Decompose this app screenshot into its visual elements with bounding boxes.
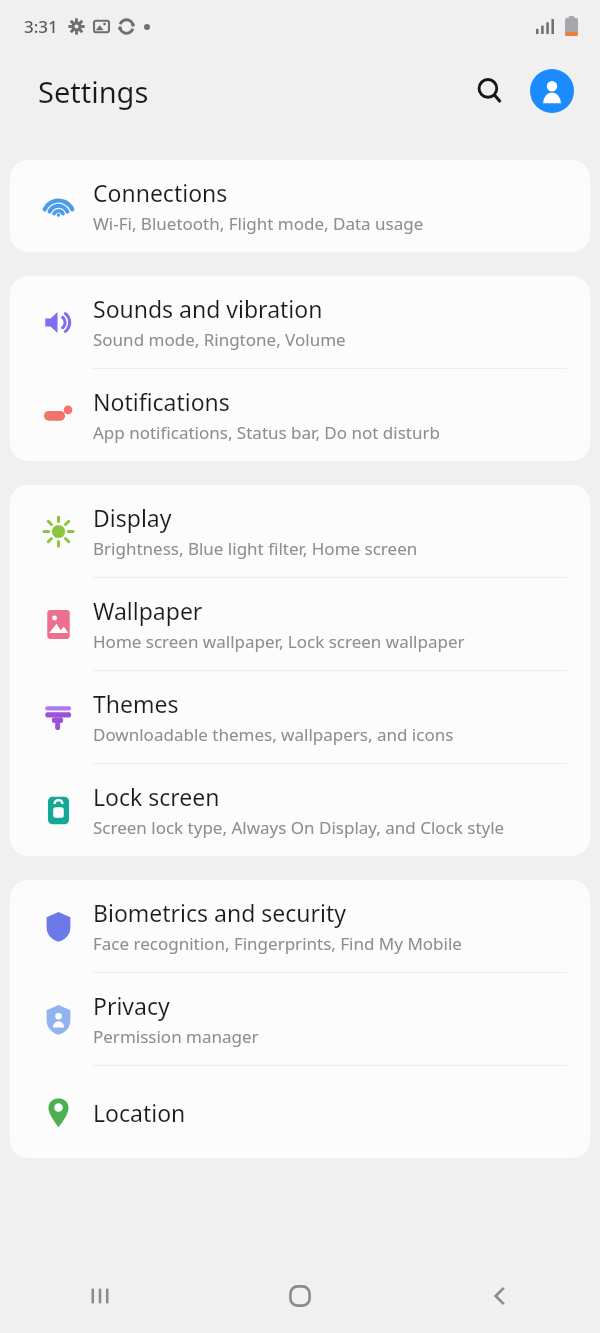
staticText: Lock screen <box>93 781 220 812</box>
button[interactable]: Search <box>467 68 513 114</box>
button[interactable]: Recents <box>0 1258 200 1333</box>
staticText: Notifications <box>93 386 230 417</box>
staticText: Wallpaper <box>93 595 203 626</box>
button[interactable]: Home <box>200 1258 400 1333</box>
button[interactable]: Location <box>10 1066 590 1158</box>
staticText: Downloadable themes, wallpapers, and ico… <box>93 723 454 746</box>
staticText: 3:31 <box>24 15 58 38</box>
staticText: Face recognition, Fingerprints, Find My … <box>93 932 462 955</box>
staticText: Privacy <box>93 990 170 1021</box>
staticText: Home screen wallpaper, Lock screen wallp… <box>93 630 465 653</box>
staticText: Location <box>93 1097 186 1128</box>
button[interactable]: Themes <box>10 671 590 763</box>
staticText: Permission manager <box>93 1025 259 1048</box>
button[interactable]: Wallpaper <box>10 578 590 670</box>
button[interactable]: Notifications <box>10 369 590 461</box>
staticText: Sounds and vibration <box>93 293 323 324</box>
staticText: Wi-Fi, Bluetooth, Flight mode, Data usag… <box>93 212 424 235</box>
staticText: App notifications, Status bar, Do not di… <box>93 421 440 444</box>
staticText: Sound mode, Ringtone, Volume <box>93 328 346 351</box>
button[interactable]: Privacy <box>10 973 590 1065</box>
button[interactable]: Display <box>10 485 590 577</box>
staticText: Settings <box>38 72 149 111</box>
staticText: Display <box>93 502 172 533</box>
button[interactable]: Back <box>400 1258 600 1333</box>
button[interactable]: Account <box>530 69 574 113</box>
button[interactable]: Connections <box>10 160 590 252</box>
staticText: Connections <box>93 177 228 208</box>
button[interactable]: Biometrics and security <box>10 880 590 972</box>
staticText: Brightness, Blue light filter, Home scre… <box>93 537 418 560</box>
staticText: Themes <box>93 688 179 719</box>
button[interactable]: Lock screen <box>10 764 590 856</box>
staticText: Screen lock type, Always On Display, and… <box>93 816 505 839</box>
button[interactable]: Sounds and vibration <box>10 276 590 368</box>
staticText: Biometrics and security <box>93 897 347 928</box>
